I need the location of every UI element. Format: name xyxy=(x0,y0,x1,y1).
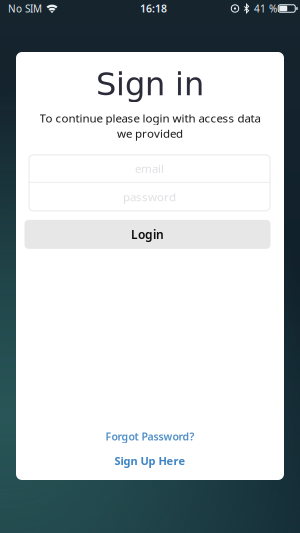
staticText: 41 % xyxy=(254,2,277,15)
staticText: Login xyxy=(131,226,164,242)
staticText: No SIM xyxy=(8,2,42,15)
staticText: To continue please login with access dat… xyxy=(39,110,260,126)
staticText: email xyxy=(135,161,164,176)
staticText: Sign Up Here xyxy=(114,453,185,468)
staticText: password xyxy=(123,189,176,204)
button[interactable]: password xyxy=(29,183,270,211)
button[interactable]: Forgot Password? xyxy=(105,429,194,443)
button[interactable]: Sign Up Here xyxy=(114,453,185,468)
staticText: we provided xyxy=(117,126,183,141)
staticText: Forgot Password? xyxy=(105,429,194,443)
staticText: 16:18 xyxy=(140,1,167,15)
button[interactable]: Login xyxy=(24,220,270,249)
button[interactable]: email xyxy=(29,155,270,182)
staticText: Sign in xyxy=(96,66,204,102)
